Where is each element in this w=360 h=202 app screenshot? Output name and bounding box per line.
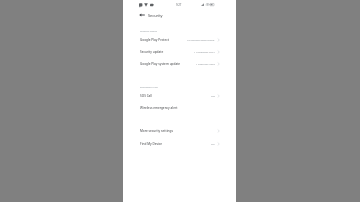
staticText: 1 November 2021 <box>194 50 215 53</box>
staticText: No harmful apps found <box>187 38 215 41</box>
button[interactable]: More security settings <box>123 125 236 136</box>
button[interactable]: Find My Device <box>123 138 236 149</box>
staticText: On <box>211 142 215 145</box>
button[interactable]: Wireless emergency alert <box>123 102 236 113</box>
staticText: 9:27 <box>176 3 182 7</box>
staticText: Security <box>148 13 163 18</box>
button[interactable]: Google Play system update <box>123 58 236 69</box>
button[interactable]: Security update <box>123 46 236 57</box>
staticText: Find My Device <box>140 142 163 146</box>
staticText: 1 February 2022 <box>196 62 215 65</box>
staticText: Google Play Protect <box>140 38 169 42</box>
button[interactable]: SOS Call <box>123 90 236 101</box>
staticText: More security settings <box>140 129 173 133</box>
staticText: Security update <box>140 50 164 54</box>
staticText: Google Play system update <box>140 62 181 66</box>
staticText: Emergency SOS <box>140 85 158 88</box>
button[interactable]: Back <box>136 10 147 20</box>
button[interactable]: Google Play Protect <box>123 34 236 45</box>
staticText: SOS Call <box>140 94 153 98</box>
staticText: Off <box>211 94 215 97</box>
staticText: Wireless emergency alert <box>140 106 178 110</box>
staticText: Security status <box>140 29 157 32</box>
